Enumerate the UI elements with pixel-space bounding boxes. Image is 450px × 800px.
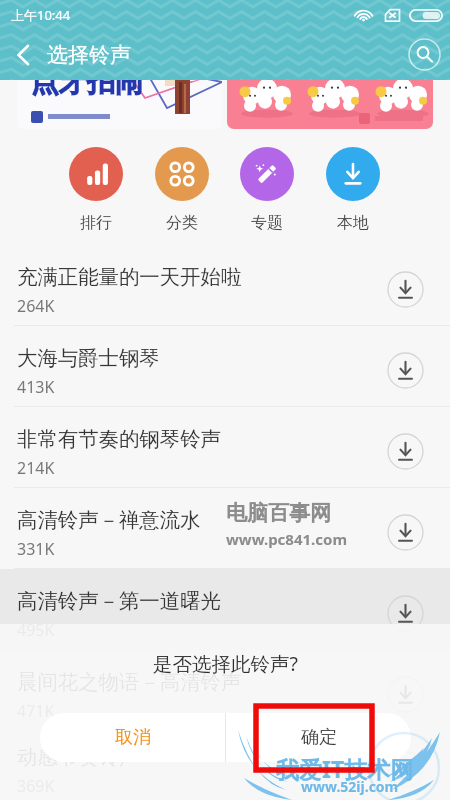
button[interactable]: 专题: [224, 129, 310, 245]
staticText: 选择铃声: [47, 42, 131, 68]
staticText: 369K: [17, 775, 55, 797]
staticText: 是否选择此铃声?: [153, 650, 298, 677]
button[interactable]: 确定: [226, 713, 411, 762]
staticText: 点牙拍闹: [31, 80, 143, 99]
button[interactable]: 高清铃声－禅意流水: [0, 488, 450, 569]
button[interactable]: 非常有节奏的钢琴铃声: [0, 407, 450, 488]
staticText: 413K: [17, 376, 55, 398]
staticText: 取消: [115, 726, 151, 749]
staticText: 我爱IT技术网: [276, 753, 414, 784]
staticText: 非常有节奏的钢琴铃声: [17, 426, 221, 452]
staticText: 上午10:44: [11, 6, 71, 24]
staticText: 大海与爵士钢琴: [17, 345, 160, 371]
button[interactable]: Download: [387, 433, 424, 470]
staticText: 331K: [17, 538, 55, 560]
staticText: 晨间花之物语－高清铃声: [17, 669, 242, 695]
button[interactable]: Download: [387, 514, 424, 551]
staticText: 495K: [17, 619, 55, 641]
button[interactable]: 大海与爵士钢琴: [0, 326, 450, 407]
button[interactable]: Back: [0, 29, 47, 80]
staticText: 专题: [251, 213, 283, 233]
staticText: 214K: [17, 457, 55, 479]
button[interactable]: Download: [387, 676, 424, 713]
button[interactable]: 分类: [139, 129, 225, 245]
staticText: www.52ij.com: [301, 777, 399, 796]
button[interactable]: 本地: [310, 129, 396, 245]
staticText: 高清铃声－第一道曙光: [17, 588, 221, 614]
button[interactable]: Download: [387, 352, 424, 389]
staticText: 排行: [80, 213, 112, 233]
button[interactable]: Download: [387, 751, 424, 788]
staticText: 动感节奏铃声: [17, 744, 140, 770]
button[interactable]: Search: [398, 29, 450, 80]
button[interactable]: 晨间花之物语－高清铃声: [0, 650, 450, 731]
staticText: 确定: [301, 726, 337, 749]
button[interactable]: 动感节奏铃声: [0, 731, 450, 800]
button[interactable]: Download: [387, 595, 424, 632]
staticText: 充满正能量的一天开始啦: [17, 264, 242, 290]
staticText: 471K: [17, 700, 55, 722]
button[interactable]: [227, 80, 433, 129]
staticText: 高清铃声－禅意流水: [17, 507, 201, 533]
staticText: 264K: [17, 295, 55, 317]
button[interactable]: 取消: [40, 713, 225, 762]
button[interactable]: 排行: [53, 129, 139, 245]
staticText: 本地: [337, 213, 369, 233]
button[interactable]: 点牙拍闹: [17, 80, 222, 129]
staticText: 分类: [166, 213, 198, 233]
button[interactable]: Download: [387, 271, 424, 308]
button[interactable]: 充满正能量的一天开始啦: [0, 245, 450, 326]
staticText: 电脑百事网: [226, 500, 331, 526]
button[interactable]: 高清铃声－第一道曙光: [0, 569, 450, 650]
staticText: www.pc841.com: [226, 529, 348, 549]
